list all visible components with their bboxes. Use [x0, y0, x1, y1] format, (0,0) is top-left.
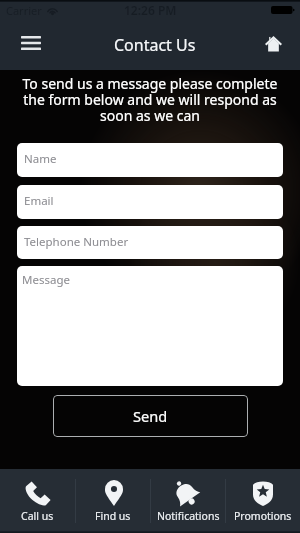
button[interactable]: Name	[17, 143, 283, 177]
staticText: To send us a message please complete the…	[10, 74, 290, 125]
staticText: Find us	[95, 509, 131, 523]
staticText: Contact Us	[114, 34, 196, 56]
staticText: Carrier	[6, 3, 42, 18]
button[interactable]: Telephone Number	[17, 226, 283, 259]
staticText: Telephone Number	[24, 234, 129, 250]
button[interactable]: Message	[17, 266, 283, 386]
staticText: Send	[133, 406, 168, 426]
button[interactable]: Send	[53, 395, 248, 437]
staticText: Name	[24, 151, 57, 167]
button[interactable]: Menu	[10, 22, 52, 64]
button[interactable]: Call us	[0, 469, 75, 533]
button[interactable]: Email	[17, 185, 283, 219]
button[interactable]: Find us	[76, 469, 150, 533]
button[interactable]: Promotions	[226, 469, 300, 533]
staticText: 12:26 PM	[124, 2, 177, 18]
staticText: Message	[22, 272, 70, 288]
staticText: Promotions	[234, 509, 292, 523]
staticText: Email	[24, 193, 54, 209]
staticText: Call us	[21, 509, 54, 523]
staticText: Notifications	[157, 509, 220, 523]
button[interactable]: Notifications	[151, 469, 225, 533]
button[interactable]: Home	[252, 22, 294, 64]
